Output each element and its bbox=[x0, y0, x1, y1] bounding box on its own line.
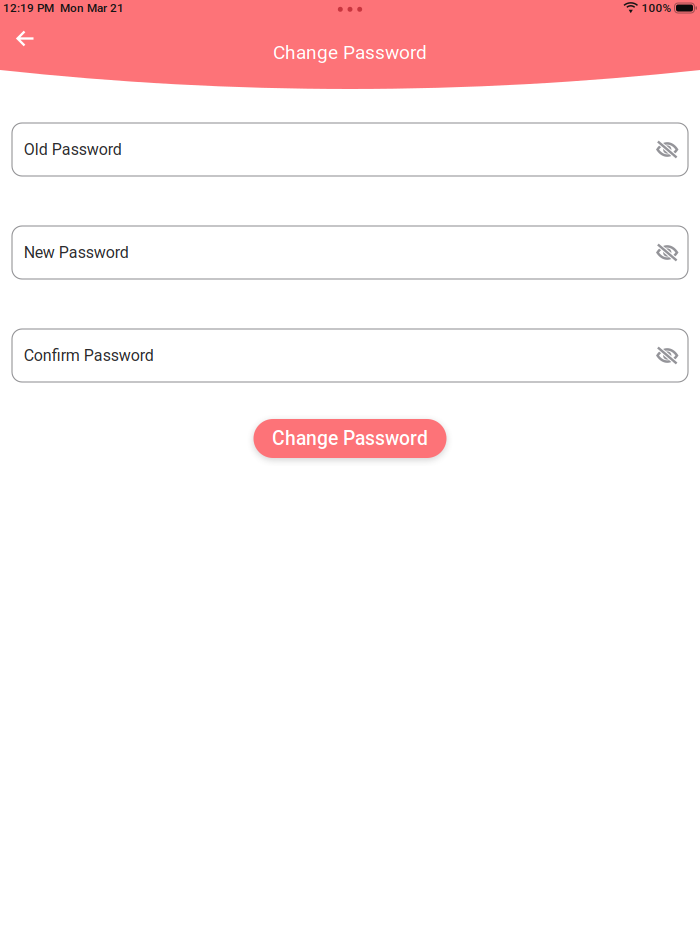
button[interactable]: Back bbox=[6, 20, 44, 56]
button[interactable]: Show password bbox=[649, 239, 685, 266]
staticText: 100% bbox=[641, 1, 671, 15]
button[interactable]: Change Password bbox=[253, 419, 446, 458]
button[interactable]: Show password bbox=[649, 342, 685, 369]
staticText: Change Password bbox=[272, 427, 428, 450]
staticText: Change Password bbox=[273, 41, 427, 64]
staticText: Old Password bbox=[24, 140, 122, 159]
staticText: Confirm Password bbox=[24, 346, 154, 365]
staticText: Mon Mar 21 bbox=[60, 1, 124, 15]
staticText: 12:19 PM bbox=[3, 1, 54, 15]
button[interactable]: Show password bbox=[649, 136, 685, 163]
staticText: New Password bbox=[24, 243, 129, 262]
